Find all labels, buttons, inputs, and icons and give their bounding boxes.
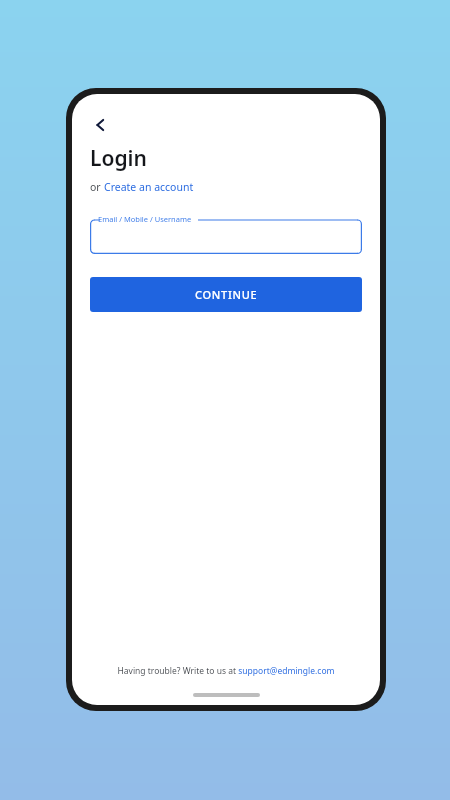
staticText: Email / Mobile / Username xyxy=(98,214,192,224)
staticText: CONTINUE xyxy=(195,287,258,302)
button[interactable]: Email / Mobile / Username xyxy=(90,214,362,254)
staticText: Having trouble? Write to us at support@e… xyxy=(117,665,335,677)
staticText: or xyxy=(90,180,104,194)
button[interactable]: CONTINUE xyxy=(90,277,362,312)
staticText: Login xyxy=(90,144,147,173)
button[interactable]: Create an account xyxy=(104,180,194,194)
staticText: Create an account xyxy=(104,180,194,194)
button[interactable]: Back xyxy=(88,112,114,138)
button[interactable]: Having trouble? Write to us at support@e… xyxy=(72,665,380,677)
